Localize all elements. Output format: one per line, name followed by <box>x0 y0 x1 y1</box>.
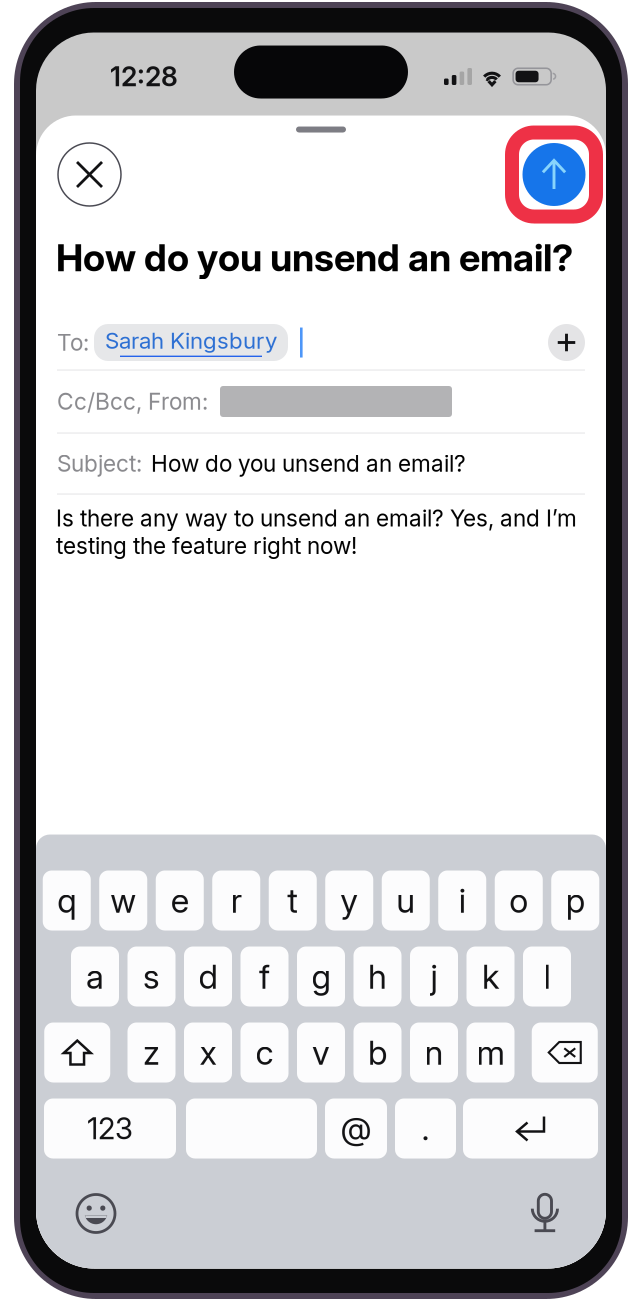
button[interactable]: Return <box>463 1098 598 1158</box>
staticText: Is there any way to unsend an email? Yes… <box>56 504 577 559</box>
staticText: How do you unsend an email? <box>151 450 466 477</box>
button[interactable]: 123 <box>44 1098 176 1158</box>
staticText: k <box>482 956 499 997</box>
staticText: u <box>396 880 415 921</box>
button[interactable]: m <box>466 1022 514 1082</box>
staticText: e <box>171 880 189 921</box>
staticText: Sarah Kingsbury <box>105 327 277 354</box>
staticText: j <box>430 956 437 997</box>
staticText: y <box>340 880 358 921</box>
staticText: Cc/Bcc, From: <box>57 388 208 415</box>
button[interactable]: b <box>353 1022 401 1082</box>
staticText: r <box>231 880 242 921</box>
button[interactable]: s <box>127 946 175 1006</box>
button[interactable]: i <box>438 870 486 930</box>
staticText: To: <box>57 329 89 356</box>
staticText: o <box>509 880 528 921</box>
button[interactable]: k <box>466 946 514 1006</box>
button[interactable]: c <box>240 1022 288 1082</box>
button[interactable]: o <box>495 870 543 930</box>
staticText: d <box>198 956 217 997</box>
staticText: 123 <box>87 1111 133 1146</box>
button[interactable]: h <box>353 946 401 1006</box>
button[interactable]: j <box>410 946 458 1006</box>
button[interactable]: z <box>127 1022 175 1082</box>
staticText: s <box>143 956 160 997</box>
staticText: m <box>476 1032 504 1073</box>
button[interactable]: u <box>382 870 430 930</box>
staticText: f <box>259 956 270 997</box>
button[interactable]: q <box>43 870 91 930</box>
staticText: t <box>287 880 298 921</box>
staticText: i <box>459 880 466 921</box>
button[interactable]: Add contact <box>548 324 585 361</box>
button[interactable]: Delete <box>532 1022 598 1082</box>
button[interactable]: v <box>297 1022 345 1082</box>
staticText: q <box>57 880 76 921</box>
staticText: p <box>566 880 585 921</box>
staticText: x <box>199 1032 216 1073</box>
button[interactable]: t <box>269 870 317 930</box>
staticText: l <box>543 956 550 997</box>
staticText: g <box>311 956 330 997</box>
staticText: z <box>143 1032 160 1073</box>
button[interactable]: f <box>240 946 288 1006</box>
staticText: v <box>312 1032 330 1073</box>
staticText: a <box>86 956 104 997</box>
staticText: c <box>255 1032 273 1073</box>
button[interactable]: w <box>99 870 147 930</box>
staticText: 12:28 <box>110 60 178 93</box>
button[interactable]: x <box>184 1022 232 1082</box>
button[interactable]: . <box>395 1098 456 1158</box>
button[interactable]: Close <box>58 143 121 206</box>
button[interactable]: l <box>523 946 571 1006</box>
button[interactable]: Shift <box>44 1022 110 1082</box>
staticText: Subject: <box>57 450 142 477</box>
button[interactable]: y <box>325 870 373 930</box>
button[interactable]: p <box>551 870 599 930</box>
button[interactable]: Send <box>512 132 596 216</box>
staticText: How do you unsend an email? <box>56 235 573 280</box>
staticText: . <box>421 1109 429 1148</box>
button[interactable]: Space <box>186 1098 317 1158</box>
staticText: w <box>110 880 136 921</box>
button[interactable]: g <box>297 946 345 1006</box>
staticText: @ <box>340 1109 371 1148</box>
button[interactable]: e <box>156 870 204 930</box>
button[interactable]: n <box>410 1022 458 1082</box>
staticText: b <box>368 1032 387 1073</box>
staticText: n <box>424 1032 443 1073</box>
staticText: h <box>368 956 387 997</box>
button[interactable]: d <box>184 946 232 1006</box>
button[interactable]: Dictate <box>532 1193 558 1233</box>
button[interactable]: r <box>212 870 260 930</box>
button[interactable]: a <box>71 946 119 1006</box>
button[interactable]: Emoji keyboard <box>77 1194 115 1232</box>
button[interactable]: @ <box>325 1098 387 1158</box>
